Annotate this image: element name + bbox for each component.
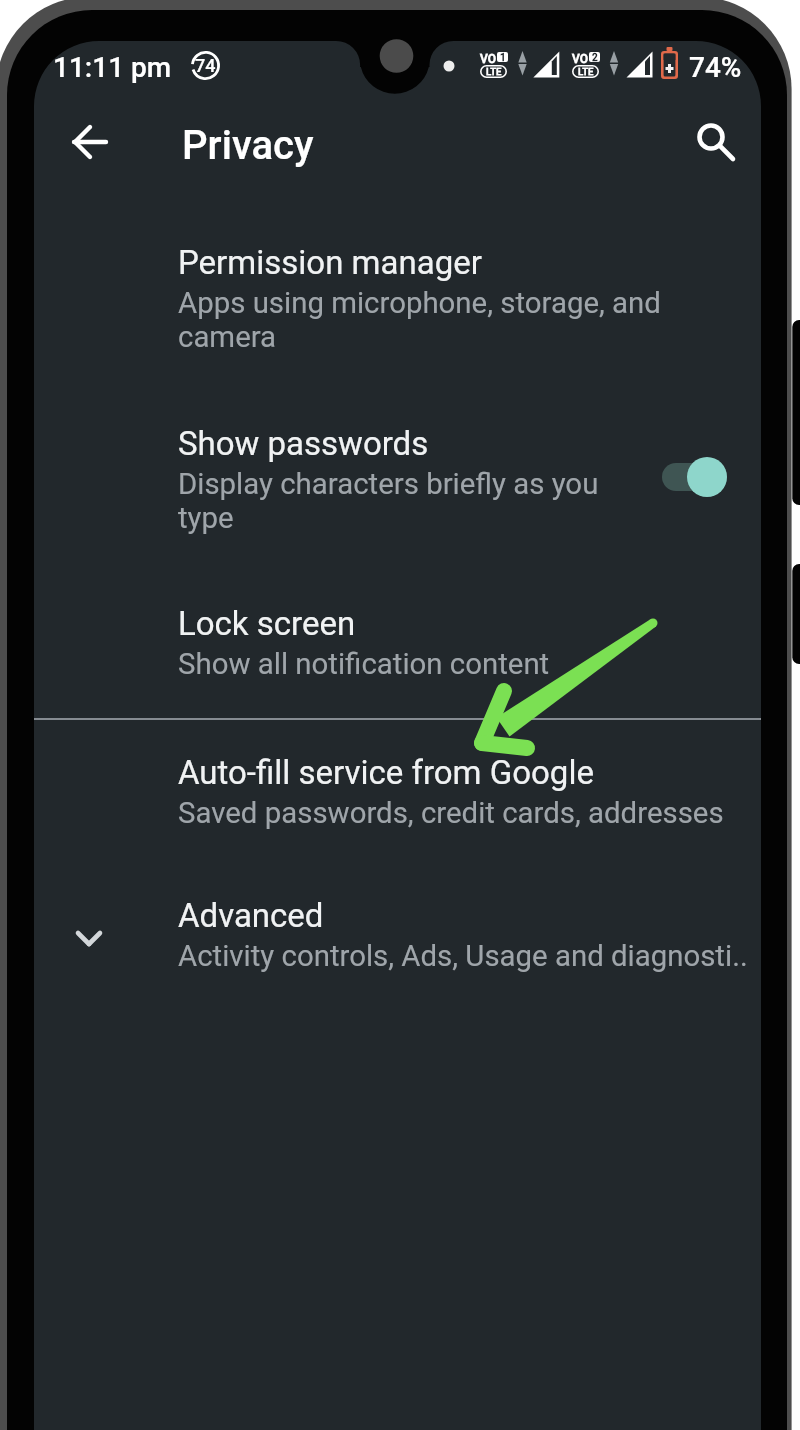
staticText: Apps using microphone, storage, and came… <box>178 286 756 354</box>
button[interactable]: Show passwords toggle <box>656 447 760 507</box>
staticText: Auto-fill service from Google <box>178 753 594 792</box>
staticText: LTE <box>486 66 502 77</box>
staticText: 2 <box>592 52 598 62</box>
staticText: Display characters briefly as you type <box>178 467 630 535</box>
staticText: 74% <box>689 51 742 84</box>
staticText: LTE <box>578 66 594 77</box>
staticText: Activity controls, Ads, Usage and diagno… <box>178 939 748 973</box>
staticText: Saved passwords, credit cards, addresses <box>178 796 724 830</box>
button[interactable]: Auto-fill service from Google <box>34 753 761 830</box>
staticText: 1 <box>500 52 506 62</box>
button[interactable]: Permission manager <box>34 243 761 354</box>
staticText: Privacy <box>182 122 314 169</box>
staticText: Lock screen <box>178 604 356 643</box>
staticText: Advanced <box>178 896 324 935</box>
button[interactable]: Search <box>685 112 745 172</box>
staticText: Permission manager <box>178 243 482 282</box>
staticText: 11:11 pm <box>53 51 172 84</box>
staticText: 74 <box>195 55 216 76</box>
button[interactable]: Advanced <box>34 896 761 973</box>
staticText: Show passwords <box>178 424 429 463</box>
button[interactable]: Lock screen <box>34 604 761 681</box>
button[interactable]: Show passwords <box>34 424 761 535</box>
staticText: VO <box>572 52 588 66</box>
button[interactable]: Back <box>60 112 120 172</box>
staticText: Show all notification content <box>178 647 550 681</box>
button[interactable]: Expand advanced <box>61 910 117 966</box>
staticText: VO <box>480 52 496 66</box>
